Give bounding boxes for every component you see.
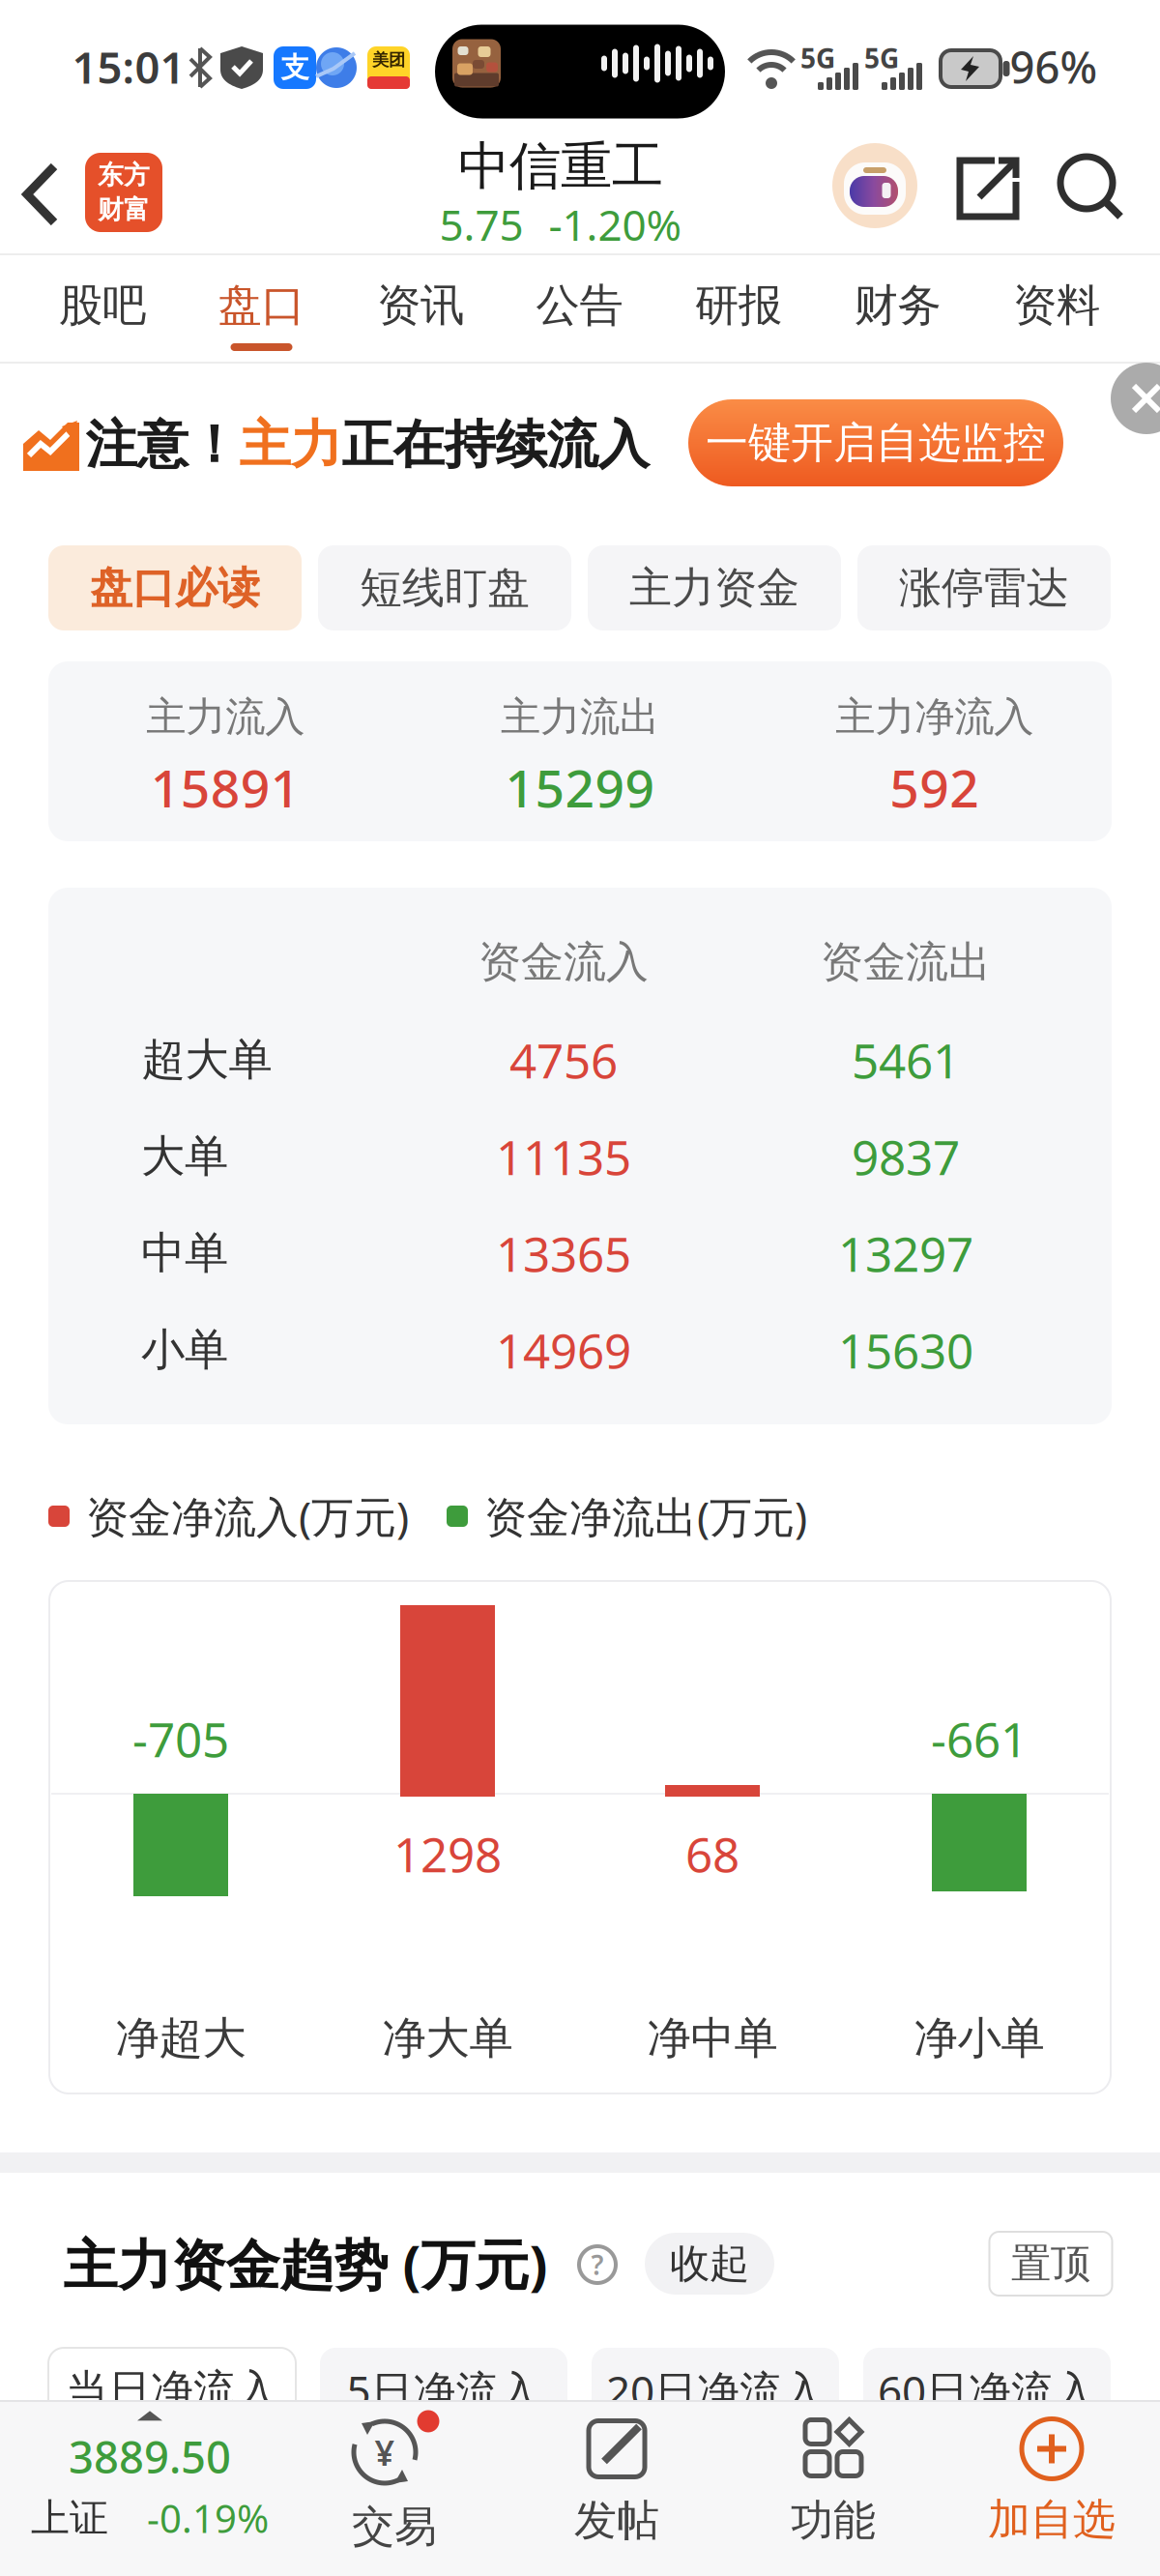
staticText: 当日净流入 xyxy=(66,2364,278,2416)
staticText: 发帖 xyxy=(574,2494,659,2547)
staticText: 13297 xyxy=(838,1221,973,1285)
staticText: 正在持续流入 xyxy=(342,413,649,476)
staticText: 60日净流入 xyxy=(878,2362,1096,2419)
staticText: 13365 xyxy=(496,1221,631,1285)
staticText: 3889.50 xyxy=(69,2427,231,2486)
button[interactable]: 一键开启自选监控 xyxy=(688,399,1063,486)
staticText: 财富 xyxy=(98,194,150,226)
staticText: 5.75 xyxy=(439,196,523,253)
staticText: 主力 xyxy=(239,413,342,476)
button[interactable]: 发帖 xyxy=(507,2406,726,2561)
staticText: 超大单 xyxy=(142,1033,272,1087)
button[interactable]: 资料 xyxy=(1013,279,1100,333)
button[interactable]: 3889.50 xyxy=(19,2405,280,2550)
staticText: 净大单 xyxy=(382,2011,513,2065)
button[interactable]: 5日净流入 xyxy=(320,2348,567,2433)
staticText: 交易 xyxy=(352,2501,437,2553)
button[interactable]: 主力资金 xyxy=(588,545,841,630)
staticText: 中信重工 xyxy=(458,135,663,198)
staticText: 15:01 xyxy=(72,38,185,96)
button[interactable]: 功能 xyxy=(725,2405,942,2560)
staticText: ? xyxy=(591,2247,604,2283)
staticText: 主力流入 xyxy=(146,693,305,742)
staticText: 净小单 xyxy=(914,2011,1044,2065)
staticText: 资金净流入(万元) xyxy=(86,1488,409,1544)
staticText: 主力流出 xyxy=(501,693,659,742)
staticText: 96% xyxy=(1010,38,1098,96)
staticText: 小单 xyxy=(141,1323,228,1377)
staticText: -1.20% xyxy=(549,196,682,253)
staticText: 盘口 xyxy=(218,279,305,333)
button[interactable]: 当日净流入 xyxy=(48,2348,296,2433)
staticText: 一键开启自选监控 xyxy=(706,417,1046,469)
staticText: 研报 xyxy=(695,279,782,333)
staticText: -661 xyxy=(931,1707,1028,1770)
staticText: 加自选 xyxy=(988,2493,1116,2546)
button[interactable]: 研报 xyxy=(695,279,782,333)
staticText: 主力净流入 xyxy=(835,693,1034,742)
staticText: 财务 xyxy=(854,279,941,333)
button[interactable]: 资讯 xyxy=(377,279,464,333)
staticText: 20日净流入 xyxy=(606,2362,825,2419)
staticText: 中单 xyxy=(141,1226,228,1280)
staticText: 收起 xyxy=(670,2239,749,2288)
staticText: 68 xyxy=(685,1822,739,1885)
button[interactable]: 加自选 xyxy=(943,2405,1160,2560)
staticText: 资金流出 xyxy=(821,936,991,988)
button[interactable]: Close xyxy=(1111,363,1160,434)
staticText: -0.19% xyxy=(147,2492,269,2544)
button[interactable]: 置顶 xyxy=(989,2232,1112,2296)
staticText: 涨停雷达 xyxy=(899,562,1069,614)
staticText: 5日净流入 xyxy=(347,2362,541,2419)
staticText: ¥ xyxy=(375,2429,395,2475)
staticText: 5G xyxy=(800,40,835,76)
staticText: 短线盯盘 xyxy=(360,562,530,614)
staticText: 5461 xyxy=(852,1028,960,1091)
staticText: 美团 xyxy=(372,50,405,70)
staticText: 功能 xyxy=(791,2494,876,2547)
staticText: 主力资金趋势 (万元) xyxy=(63,2228,548,2300)
button[interactable]: 盘口必读 xyxy=(48,545,302,630)
staticText: 资料 xyxy=(1013,279,1100,333)
staticText: 支 xyxy=(281,50,309,85)
button[interactable]: 20日净流入 xyxy=(592,2348,839,2433)
staticText: 592 xyxy=(890,753,979,822)
staticText: 15299 xyxy=(505,753,655,822)
button[interactable]: 股吧 xyxy=(59,279,146,333)
staticText: 盘口必读 xyxy=(90,562,260,614)
staticText: 4756 xyxy=(509,1028,618,1091)
button[interactable]: Back xyxy=(25,164,58,224)
staticText: 14969 xyxy=(496,1318,631,1382)
button[interactable]: Help xyxy=(576,2243,619,2286)
staticText: 15630 xyxy=(838,1318,973,1382)
button[interactable]: 财务 xyxy=(854,279,941,333)
staticText: 注意！ xyxy=(86,413,239,476)
staticText: 公告 xyxy=(536,279,623,333)
staticText: 15891 xyxy=(151,753,300,822)
button[interactable]: 60日净流入 xyxy=(863,2348,1111,2433)
button[interactable]: Search xyxy=(1058,155,1122,219)
staticText: 资讯 xyxy=(377,279,464,333)
button[interactable]: 盘口 xyxy=(218,279,305,333)
staticText: 主力资金 xyxy=(629,562,799,614)
staticText: 置顶 xyxy=(1011,2239,1090,2288)
button[interactable]: 收起 xyxy=(645,2233,774,2295)
staticText: 净超大 xyxy=(116,2011,246,2065)
button[interactable]: ¥ xyxy=(272,2402,517,2561)
staticText: 9837 xyxy=(852,1125,960,1188)
button[interactable]: Assistant xyxy=(832,143,917,228)
button[interactable]: 涨停雷达 xyxy=(857,545,1111,630)
button[interactable]: 公告 xyxy=(536,279,623,333)
staticText: 净中单 xyxy=(647,2011,778,2065)
staticText: 大单 xyxy=(141,1130,228,1183)
staticText: 东方 xyxy=(98,159,150,191)
staticText: 11135 xyxy=(496,1125,631,1188)
button[interactable]: Share xyxy=(956,157,1020,220)
staticText: 资金净流出(万元) xyxy=(484,1488,807,1544)
staticText: 1298 xyxy=(393,1822,502,1885)
staticText: 上证 xyxy=(31,2494,108,2542)
button[interactable]: 短线盯盘 xyxy=(318,545,571,630)
staticText: -705 xyxy=(132,1707,229,1770)
staticText: 资金流入 xyxy=(478,936,649,988)
staticText: 5G xyxy=(864,40,899,76)
